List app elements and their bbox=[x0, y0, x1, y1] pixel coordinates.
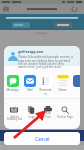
button[interactable]: getfreeapp.com bbox=[4, 46, 80, 66]
button[interactable]: Message bbox=[6, 75, 19, 92]
button[interactable]: Add to Reading List bbox=[6, 106, 22, 121]
button[interactable]: Reminders bbox=[39, 75, 52, 96]
staticText: Add to Reading List bbox=[7, 115, 22, 121]
button[interactable]: Print bbox=[40, 106, 56, 119]
button[interactable]: Find on Page bbox=[57, 106, 73, 119]
staticText: Copy bbox=[28, 115, 35, 119]
button[interactable]: More apps bbox=[73, 75, 80, 87]
button[interactable]: Copy bbox=[23, 106, 39, 119]
staticText: Please Subscribe with people receive, it… bbox=[18, 55, 74, 69]
staticText: Print bbox=[45, 115, 51, 119]
other: Find on Page bbox=[61, 106, 69, 114]
staticText: Message bbox=[6, 88, 19, 92]
staticText: Mail bbox=[27, 88, 33, 92]
other: Copy bbox=[27, 106, 35, 114]
other: Add to Reading List bbox=[10, 106, 18, 114]
staticText: Cancel bbox=[35, 136, 50, 142]
staticText: Notes bbox=[58, 88, 67, 92]
other: Print bbox=[44, 106, 52, 114]
button[interactable]: Cancel bbox=[4, 132, 80, 145]
staticText: getfreeapp.com bbox=[18, 50, 44, 54]
button[interactable]: Notes bbox=[56, 75, 69, 92]
button[interactable]: Mail bbox=[23, 75, 36, 92]
staticText: Find on Page bbox=[57, 115, 73, 119]
staticText: Reminders bbox=[39, 88, 52, 96]
